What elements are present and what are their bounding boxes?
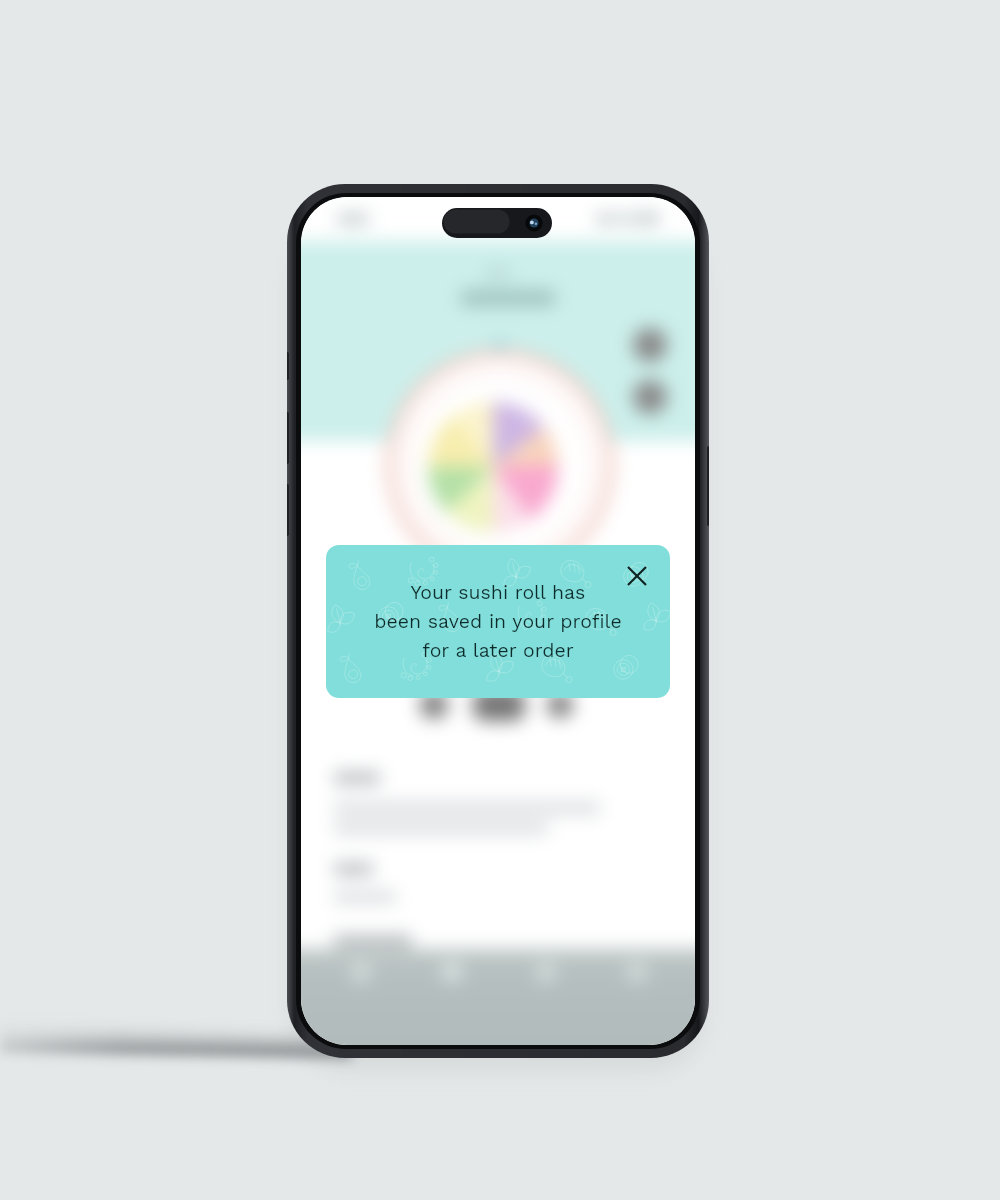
button[interactable]: Favourite — [414, 685, 454, 725]
button[interactable]: Order now — [469, 685, 529, 725]
button[interactable]: More options — [540, 685, 580, 725]
button[interactable]: Your sushi roll has been saved in your p… — [326, 545, 670, 698]
button[interactable]: Profile — [596, 949, 695, 997]
button[interactable]: Close — [620, 559, 654, 593]
button[interactable]: Edit plate — [633, 328, 667, 362]
button[interactable]: Share plate — [633, 380, 667, 414]
button[interactable]: Orders — [497, 949, 596, 997]
staticText: Your sushi roll has been saved in your p… — [374, 581, 622, 662]
button[interactable]: Explore — [399, 949, 497, 997]
button[interactable]: Home — [301, 949, 399, 997]
